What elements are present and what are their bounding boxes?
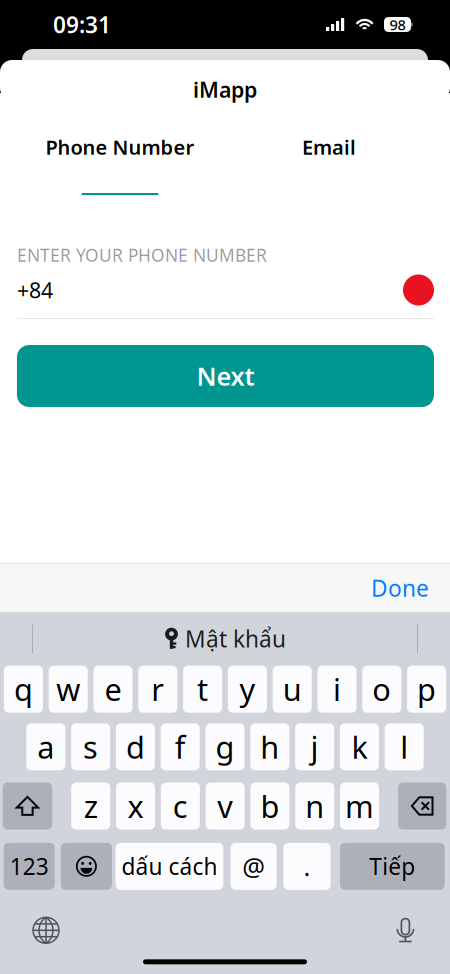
button[interactable]: 123 [4, 843, 55, 890]
button[interactable]: Phone Number [14, 129, 226, 203]
button[interactable]: d [116, 723, 155, 770]
staticText: k [351, 726, 367, 767]
staticText: Next [196, 359, 254, 393]
button[interactable]: j [295, 723, 334, 770]
staticText: Tiếp [369, 851, 415, 881]
button[interactable]: c [161, 782, 200, 829]
button[interactable]: a [26, 723, 65, 770]
button[interactable]: Mật khẩu [164, 624, 286, 654]
button[interactable]: g [205, 723, 244, 770]
button[interactable]: t [183, 666, 222, 713]
staticText: 09:31 [53, 9, 111, 39]
button[interactable]: Dictation [394, 916, 417, 944]
button[interactable]: . [283, 843, 331, 890]
button[interactable]: e [93, 666, 132, 713]
staticText: h [260, 726, 279, 767]
button[interactable]: Next keyboard [32, 916, 60, 944]
button[interactable]: u [273, 666, 312, 713]
staticText: Mật khẩu [185, 624, 286, 654]
staticText: w [56, 669, 80, 709]
button[interactable]: x [116, 782, 155, 829]
staticText: o [372, 669, 391, 709]
button[interactable]: k [340, 723, 379, 770]
staticText: q [14, 669, 33, 709]
button[interactable]: Delete [398, 782, 446, 829]
staticText: y [239, 669, 255, 709]
staticText: 123 [10, 851, 49, 881]
staticText: Phone Number [45, 134, 194, 160]
staticText: j [311, 726, 319, 767]
staticText: n [305, 786, 324, 826]
button[interactable]: w [49, 666, 88, 713]
button[interactable]: f [161, 723, 200, 770]
staticText: iMapp [193, 75, 257, 104]
staticText: u [283, 669, 302, 709]
staticText: d [126, 726, 145, 767]
staticText: Email [302, 134, 356, 160]
button[interactable]: s [71, 723, 110, 770]
button[interactable]: y [228, 666, 267, 713]
button[interactable]: Done [371, 573, 450, 603]
staticText: a [37, 726, 54, 767]
staticText: r [151, 669, 164, 709]
staticText: z [84, 786, 98, 826]
button[interactable]: Next [17, 345, 434, 407]
staticText: p [417, 669, 436, 709]
staticText: Done [371, 573, 429, 603]
button[interactable]: i [317, 666, 356, 713]
staticText: +84 [17, 276, 53, 304]
staticText: l [400, 726, 408, 767]
staticText: i [333, 669, 341, 709]
button[interactable]: dấu cách [116, 843, 223, 890]
staticText: v [217, 786, 233, 826]
staticText: b [260, 786, 279, 826]
button[interactable]: r [138, 666, 177, 713]
staticText: s [83, 726, 98, 767]
staticText: ENTER YOUR PHONE NUMBER [17, 243, 267, 266]
button[interactable]: z [71, 782, 110, 829]
button[interactable]: q [4, 666, 43, 713]
staticText: t [197, 669, 208, 709]
button[interactable]: Emoji [61, 843, 112, 890]
staticText: g [215, 726, 234, 767]
button[interactable]: Shift [3, 782, 52, 829]
button[interactable]: @ [231, 843, 277, 890]
staticText: dấu cách [121, 851, 217, 881]
staticText: e [104, 669, 121, 709]
staticText: @ [242, 849, 265, 883]
button[interactable]: m [340, 782, 379, 829]
staticText: x [127, 786, 143, 826]
button[interactable]: l [385, 723, 424, 770]
button[interactable]: b [250, 782, 289, 829]
button[interactable]: Email [234, 129, 424, 203]
staticText: 98 [389, 15, 405, 34]
button[interactable]: h [250, 723, 289, 770]
staticText: c [173, 786, 188, 826]
staticText: m [345, 786, 374, 826]
button[interactable]: n [295, 782, 334, 829]
button[interactable]: o [362, 666, 401, 713]
button[interactable]: v [206, 782, 245, 829]
button[interactable]: Tiếp [340, 843, 445, 890]
button[interactable]: p [407, 666, 446, 713]
staticText: . [303, 849, 310, 883]
staticText: f [175, 726, 186, 767]
